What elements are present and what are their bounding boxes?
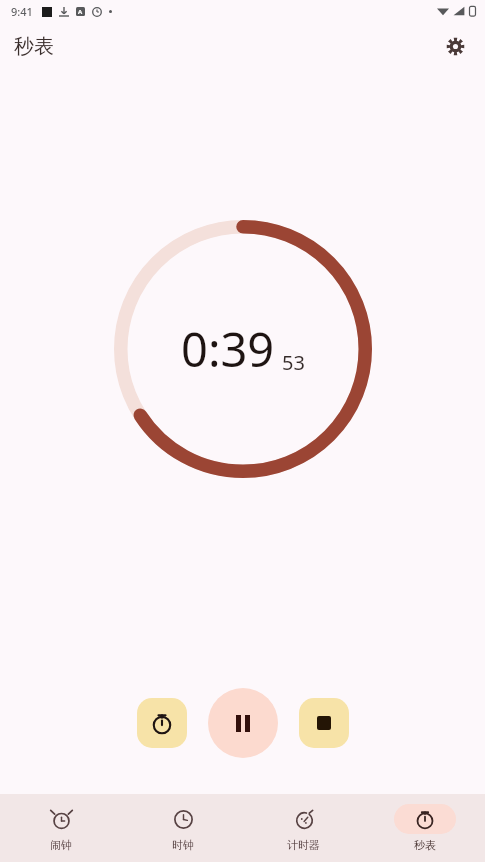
button[interactable]: Stop <box>299 698 349 748</box>
staticText: 计时器 <box>287 838 320 852</box>
button[interactable]: Settings <box>435 26 475 66</box>
staticText: 秒表 <box>14 34 54 59</box>
staticText: A <box>78 8 83 16</box>
staticText: 秒表 <box>414 838 436 852</box>
staticText: 53 <box>282 349 305 376</box>
button[interactable]: 闹钟 <box>0 794 122 862</box>
button[interactable]: 秒表 <box>364 794 485 862</box>
button[interactable]: 时钟 <box>122 794 243 862</box>
staticText: 0:39 <box>181 317 275 381</box>
button[interactable]: Pause <box>208 688 278 758</box>
staticText: 闹钟 <box>50 838 72 852</box>
staticText: 9:41 <box>11 4 33 19</box>
button[interactable]: 计时器 <box>243 794 364 862</box>
staticText: 时钟 <box>172 838 194 852</box>
button[interactable]: Lap <box>137 698 187 748</box>
